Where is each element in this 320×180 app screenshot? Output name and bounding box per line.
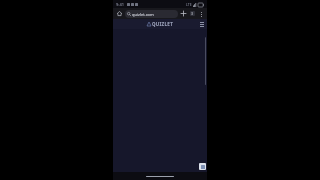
button[interactable]: New tab bbox=[179, 9, 188, 18]
staticText: 3 bbox=[191, 11, 194, 16]
staticText: LTE bbox=[186, 2, 192, 7]
button[interactable]: More options bbox=[197, 10, 205, 18]
button[interactable]: Floating action bbox=[199, 163, 206, 170]
button[interactable]: QUIZLET bbox=[147, 21, 174, 27]
button[interactable]: quizlet.com bbox=[125, 10, 178, 18]
staticText: quizlet.com bbox=[132, 12, 154, 17]
button[interactable]: Home bbox=[115, 9, 124, 18]
staticText: QUIZLET bbox=[152, 21, 174, 27]
button[interactable]: Menu bbox=[198, 21, 205, 28]
staticText: 9:41 bbox=[116, 2, 124, 7]
button[interactable]: Switch tabs bbox=[188, 9, 197, 18]
